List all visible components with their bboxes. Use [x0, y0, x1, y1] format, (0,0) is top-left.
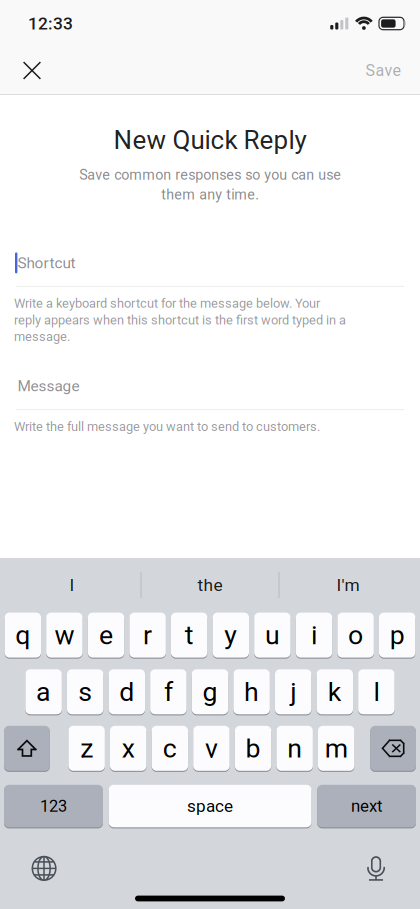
- staticText: 123: [40, 796, 67, 816]
- staticText: b: [246, 733, 261, 764]
- button[interactable]: I'm: [279, 558, 416, 612]
- button[interactable]: b: [235, 725, 271, 771]
- staticText: z: [80, 733, 93, 764]
- staticText: g: [202, 676, 217, 707]
- staticText: l: [373, 676, 379, 707]
- button[interactable]: s: [67, 669, 103, 715]
- staticText: t: [185, 619, 194, 651]
- staticText: Write a keyboard shortcut for the messag…: [14, 296, 346, 344]
- staticText: o: [348, 619, 363, 651]
- button[interactable]: Dictate: [352, 854, 400, 883]
- staticText: I: [69, 575, 74, 595]
- button[interactable]: u: [254, 612, 291, 658]
- button[interactable]: o: [337, 612, 374, 658]
- button[interactable]: Close: [6, 47, 58, 93]
- staticText: n: [287, 733, 302, 764]
- staticText: 12:33: [28, 13, 73, 34]
- staticText: f: [164, 676, 173, 707]
- staticText: q: [15, 619, 30, 651]
- button[interactable]: c: [152, 725, 188, 771]
- button[interactable]: next: [317, 784, 416, 828]
- staticText: Message: [17, 377, 79, 395]
- button[interactable]: Delete: [370, 725, 416, 771]
- staticText: w: [54, 619, 74, 651]
- staticText: r: [143, 619, 152, 651]
- button[interactable]: z: [68, 725, 105, 771]
- staticText: s: [78, 676, 92, 707]
- staticText: a: [36, 676, 51, 707]
- staticText: h: [244, 676, 259, 707]
- staticText: v: [205, 733, 218, 764]
- button[interactable]: h: [233, 669, 270, 715]
- button[interactable]: Switch keyboard: [20, 854, 68, 883]
- button[interactable]: w: [46, 612, 83, 658]
- button[interactable]: d: [108, 669, 145, 715]
- button[interactable]: Save: [352, 47, 414, 93]
- staticText: New Quick Reply: [113, 125, 306, 155]
- staticText: x: [122, 733, 135, 764]
- staticText: Write the full message you want to send …: [14, 419, 320, 434]
- button[interactable]: r: [129, 612, 166, 658]
- button[interactable]: n: [276, 725, 313, 771]
- button[interactable]: x: [110, 725, 146, 771]
- button[interactable]: the: [141, 558, 278, 612]
- button[interactable]: g: [192, 669, 228, 715]
- button[interactable]: space: [109, 784, 311, 828]
- button[interactable]: t: [171, 612, 207, 658]
- staticText: space: [187, 796, 233, 816]
- button[interactable]: q: [5, 612, 41, 658]
- button[interactable]: f: [150, 669, 187, 715]
- button[interactable]: m: [318, 725, 354, 771]
- button[interactable]: j: [275, 669, 311, 715]
- staticText: Save: [365, 61, 400, 80]
- staticText: e: [99, 619, 113, 651]
- staticText: Shortcut: [17, 254, 75, 272]
- staticText: the: [197, 575, 222, 595]
- staticText: I'm: [336, 575, 359, 595]
- staticText: Save common responses so you can use the…: [79, 166, 341, 203]
- button[interactable]: e: [88, 612, 124, 658]
- staticText: d: [119, 676, 134, 707]
- staticText: i: [311, 619, 317, 651]
- button[interactable]: I: [3, 558, 140, 612]
- button[interactable]: Shift: [4, 725, 50, 771]
- staticText: j: [290, 676, 296, 707]
- button[interactable]: y: [213, 612, 249, 658]
- button[interactable]: a: [25, 669, 62, 715]
- staticText: p: [390, 619, 405, 651]
- staticText: k: [328, 676, 342, 707]
- staticText: u: [265, 619, 280, 651]
- staticText: next: [351, 796, 382, 816]
- button[interactable]: i: [296, 612, 332, 658]
- staticText: y: [224, 619, 237, 651]
- button[interactable]: 123: [4, 784, 103, 828]
- button[interactable]: p: [379, 612, 415, 658]
- button[interactable]: l: [358, 669, 395, 715]
- button[interactable]: k: [316, 669, 353, 715]
- staticText: c: [163, 733, 177, 764]
- button[interactable]: v: [193, 725, 230, 771]
- staticText: m: [325, 733, 348, 764]
